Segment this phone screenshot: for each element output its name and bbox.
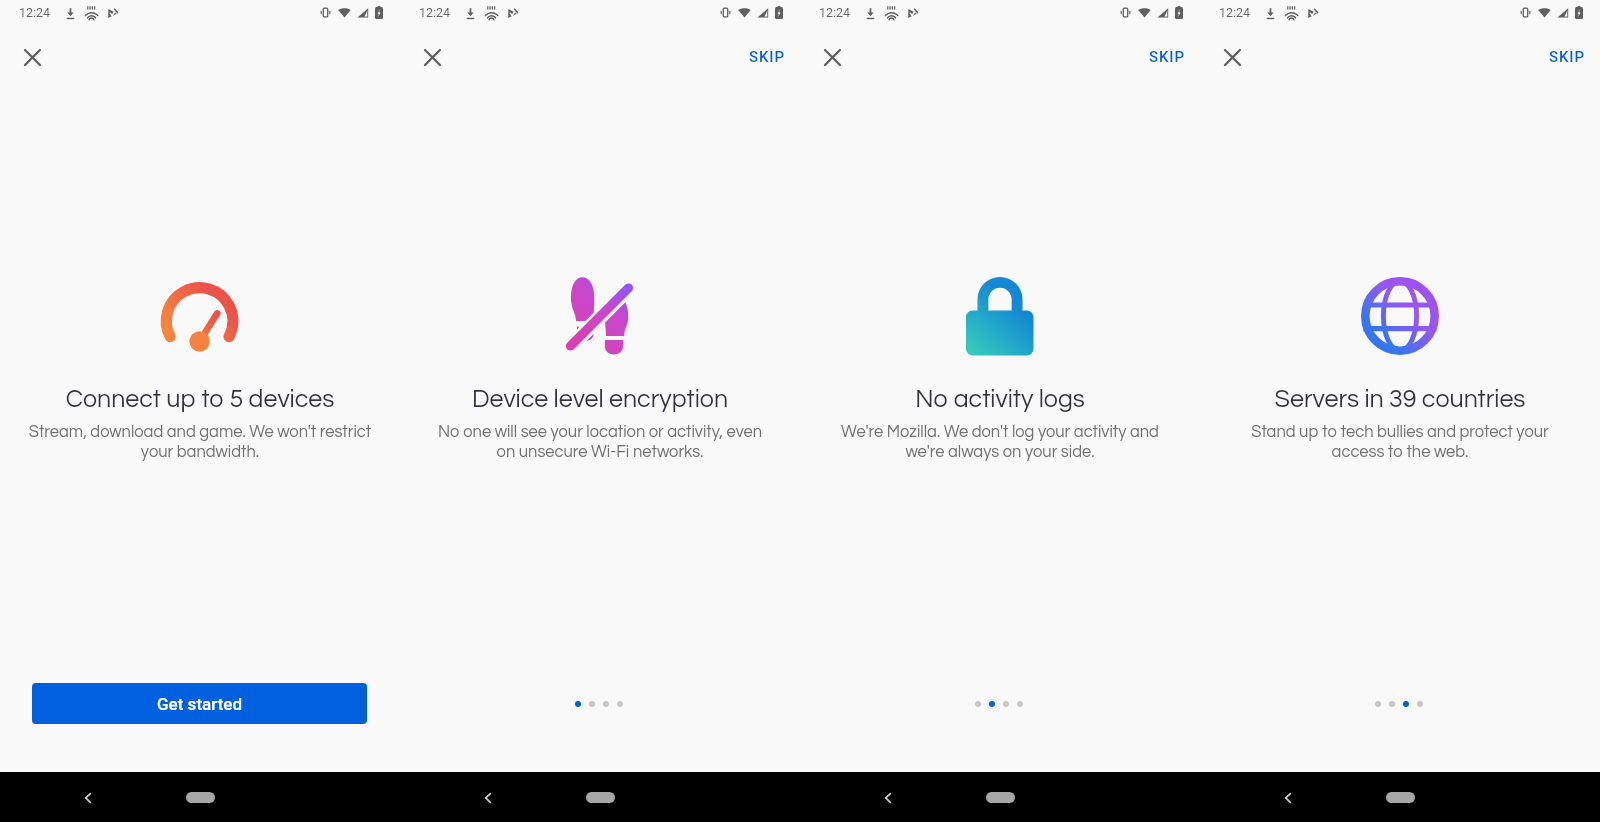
staticText: Stream, download and game. We won't rest… bbox=[28, 423, 372, 460]
button[interactable]: Close bbox=[14, 39, 50, 75]
staticText: SKIP bbox=[1149, 48, 1185, 66]
button[interactable]: SKIP bbox=[1149, 39, 1185, 75]
staticText: SKIP bbox=[749, 48, 785, 66]
other: Back bbox=[84, 792, 92, 804]
other: Home bbox=[986, 792, 1015, 803]
staticText: No one will see your location or activit… bbox=[428, 423, 772, 460]
button[interactable]: SKIP bbox=[1549, 39, 1585, 75]
button[interactable]: SKIP bbox=[749, 39, 785, 75]
staticText: Get started bbox=[157, 694, 243, 714]
other: Back bbox=[1284, 792, 1292, 804]
staticText: SKIP bbox=[1549, 48, 1585, 66]
staticText: Connect up to 5 devices bbox=[12, 386, 388, 412]
button[interactable]: Close bbox=[814, 39, 850, 75]
staticText: Device level encryption bbox=[412, 386, 788, 412]
button[interactable]: Close bbox=[414, 39, 450, 75]
other: Back bbox=[484, 792, 492, 804]
other: Back bbox=[884, 792, 892, 804]
staticText: 12:24 bbox=[819, 5, 851, 20]
staticText: Stand up to tech bullies and protect you… bbox=[1228, 423, 1572, 460]
staticText: 12:24 bbox=[1219, 5, 1251, 20]
staticText: 12:24 bbox=[419, 5, 451, 20]
staticText: We're Mozilla. We don't log your activit… bbox=[828, 423, 1172, 460]
button[interactable]: Get started bbox=[32, 683, 367, 724]
other: Home bbox=[1386, 792, 1415, 803]
button[interactable]: Close bbox=[1214, 39, 1250, 75]
staticText: Servers in 39 countries bbox=[1212, 386, 1588, 412]
staticText: No activity logs bbox=[812, 386, 1188, 412]
staticText: 12:24 bbox=[19, 5, 51, 20]
other: Home bbox=[586, 792, 615, 803]
other: Home bbox=[186, 792, 215, 803]
